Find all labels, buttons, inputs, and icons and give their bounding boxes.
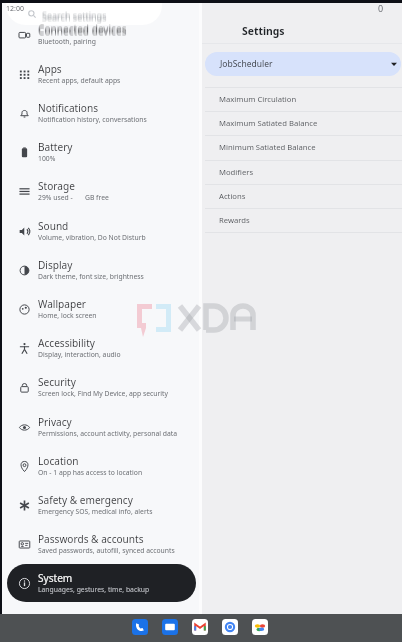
staticText: Connected devices xyxy=(38,24,127,38)
button[interactable]: Notifications xyxy=(7,94,196,132)
staticText: Search settings xyxy=(42,8,107,20)
staticText: Permissions, account activity, personal … xyxy=(38,429,178,438)
staticText: Search settings xyxy=(42,11,107,23)
staticText: 0 xyxy=(378,2,384,14)
staticText: Display xyxy=(38,258,73,272)
staticText: Sound xyxy=(38,219,69,233)
button[interactable]: Minimum Satiated Balance xyxy=(202,135,402,159)
staticText: Wallpaper xyxy=(38,297,86,311)
staticText: Security xyxy=(38,375,76,389)
staticText: Display, interaction, audio xyxy=(38,350,121,359)
staticText: Storage xyxy=(38,179,75,193)
button[interactable]: Gmail xyxy=(192,619,208,635)
button[interactable]: Chrome xyxy=(222,619,238,635)
staticText: 29% used - GB free xyxy=(38,193,109,202)
button[interactable]: Messages xyxy=(162,619,178,635)
button[interactable]: Accessibility xyxy=(7,329,196,367)
staticText: Modifiers xyxy=(219,167,254,177)
staticText: Location xyxy=(38,454,79,468)
button[interactable]: Modifiers xyxy=(202,160,402,184)
staticText: Passwords & accounts xyxy=(38,532,144,546)
staticText: Battery xyxy=(38,140,73,154)
staticText: Privacy xyxy=(38,415,72,429)
staticText: JobScheduler xyxy=(220,58,273,70)
button[interactable]: Storage xyxy=(7,172,196,210)
button[interactable]: Privacy xyxy=(7,408,196,446)
button[interactable]: Photos xyxy=(252,619,268,635)
staticText: Home, lock screen xyxy=(38,311,97,320)
staticText: Emergency SOS, medical info, alerts xyxy=(38,507,153,516)
staticText: Volume, vibration, Do Not Disturb xyxy=(38,233,146,242)
staticText: Notification history, conversations xyxy=(38,115,147,124)
button[interactable]: Maximum Circulation xyxy=(202,87,402,111)
staticText: Languages, gestures, time, backup xyxy=(38,585,150,594)
button[interactable]: Battery xyxy=(7,133,196,171)
button[interactable]: Actions xyxy=(202,184,402,208)
button[interactable]: Maximum Satiated Balance xyxy=(202,111,402,135)
staticText: Actions xyxy=(219,191,246,201)
button[interactable]: Rewards xyxy=(202,208,402,232)
staticText: Recent apps, default apps xyxy=(38,76,121,85)
button[interactable]: JobScheduler xyxy=(205,52,401,76)
button[interactable]: Phone xyxy=(132,619,148,635)
staticText: Accessibility xyxy=(38,336,95,350)
staticText: Notifications xyxy=(38,101,99,115)
staticText: Minimum Satiated Balance xyxy=(219,142,316,152)
staticText: Settings xyxy=(242,24,285,38)
button[interactable]: System xyxy=(7,564,196,602)
staticText: Connected devices xyxy=(38,25,127,39)
button[interactable]: Location xyxy=(7,447,196,485)
staticText: Search settings xyxy=(42,9,107,21)
staticText: 100% xyxy=(38,154,56,163)
staticText: System xyxy=(38,571,73,585)
staticText: Saved passwords, autofill, synced accoun… xyxy=(38,546,175,555)
button[interactable]: Search settings xyxy=(6,0,162,25)
staticText: Maximum Satiated Balance xyxy=(219,118,318,128)
staticText: Connected devices xyxy=(38,22,127,36)
staticText: Bluetooth, pairing xyxy=(38,37,96,46)
staticText: On - 1 app has access to location xyxy=(38,468,143,477)
staticText: Screen lock, Find My Device, app securit… xyxy=(38,389,168,398)
button[interactable]: Wallpaper xyxy=(7,290,196,328)
button[interactable]: Sound xyxy=(7,212,196,250)
button[interactable]: Connected devices xyxy=(7,16,196,54)
staticText: Dark theme, font size, brightness xyxy=(38,272,144,281)
staticText: Connected devices xyxy=(38,23,127,37)
staticText: Safety & emergency xyxy=(38,493,133,507)
staticText: Search settings xyxy=(42,12,107,24)
staticText: Maximum Circulation xyxy=(219,94,297,104)
staticText: Rewards xyxy=(219,215,250,225)
button[interactable]: Apps xyxy=(7,55,196,93)
button[interactable]: Security xyxy=(7,368,196,406)
button[interactable]: Display xyxy=(7,251,196,289)
staticText: Connected devices xyxy=(38,21,127,35)
staticText: Apps xyxy=(38,62,62,76)
button[interactable]: Settings xyxy=(202,0,402,43)
button[interactable]: Passwords & accounts xyxy=(7,525,196,563)
button[interactable]: Safety & emergency xyxy=(7,486,196,524)
staticText: Search settings xyxy=(42,10,107,22)
staticText: 12:00 xyxy=(6,4,24,14)
